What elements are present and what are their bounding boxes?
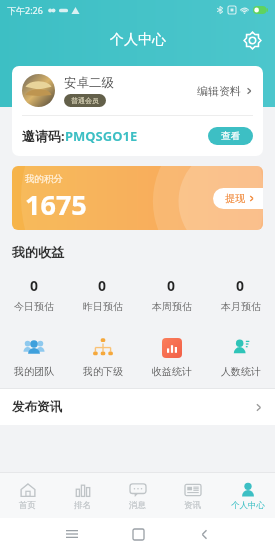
staticText: 本月预估 bbox=[221, 300, 261, 313]
button[interactable]: 0 bbox=[206, 276, 275, 313]
button[interactable]: 消息 bbox=[110, 473, 165, 518]
staticText: 我的团队 bbox=[14, 365, 54, 378]
button[interactable]: 0 bbox=[68, 276, 137, 313]
button[interactable]: 个人中心 bbox=[220, 473, 275, 518]
staticText: 提现 bbox=[225, 192, 245, 205]
button[interactable]: Recents bbox=[52, 518, 92, 550]
staticText: 发布资讯 bbox=[12, 399, 62, 415]
staticText: 邀请码: bbox=[22, 127, 65, 145]
staticText: 0 bbox=[236, 276, 245, 295]
staticText: 0 bbox=[30, 276, 39, 295]
staticText: 个人中心 bbox=[231, 500, 265, 511]
staticText: 查看 bbox=[221, 130, 240, 142]
staticText: 今日预估 bbox=[14, 300, 54, 313]
staticText: 资讯 bbox=[184, 500, 201, 511]
staticText: 人数统计 bbox=[221, 365, 261, 378]
button[interactable]: 0 bbox=[0, 276, 68, 313]
button[interactable]: 排名 bbox=[55, 473, 110, 518]
button[interactable]: Back bbox=[184, 518, 224, 550]
staticText: 本周预估 bbox=[152, 300, 192, 313]
staticText: 收益统计 bbox=[152, 365, 192, 378]
staticText: 下午2:26 bbox=[7, 4, 43, 16]
staticText: 1675 bbox=[25, 186, 87, 223]
button[interactable]: 安卓二级 bbox=[22, 66, 253, 115]
staticText: 0 bbox=[167, 276, 176, 295]
button[interactable]: Home bbox=[118, 518, 158, 550]
staticText: 安卓二级 bbox=[64, 75, 114, 91]
staticText: 普通会员 bbox=[71, 96, 99, 105]
staticText: 0 bbox=[98, 276, 107, 295]
button[interactable]: 我的积分 bbox=[12, 166, 263, 230]
button[interactable]: 我的团队 bbox=[0, 337, 68, 378]
staticText: 我的收益 bbox=[12, 244, 64, 260]
button[interactable]: 资讯 bbox=[165, 473, 220, 518]
staticText: PMQSGO1E bbox=[65, 127, 138, 145]
staticText: 个人中心 bbox=[110, 31, 166, 49]
button[interactable]: 提现 bbox=[213, 188, 263, 209]
button[interactable]: 查看 bbox=[208, 127, 253, 145]
staticText: 排名 bbox=[74, 500, 91, 511]
button[interactable]: 人数统计 bbox=[206, 337, 275, 378]
staticText: 我的下级 bbox=[83, 365, 123, 378]
staticText: 消息 bbox=[129, 500, 146, 511]
button[interactable]: 首页 bbox=[0, 473, 55, 518]
button[interactable]: Settings bbox=[239, 27, 265, 53]
button[interactable]: 我的下级 bbox=[68, 337, 137, 378]
staticText: 我的积分 bbox=[25, 173, 63, 185]
button[interactable]: 发布资讯 bbox=[0, 389, 275, 425]
staticText: 编辑资料 bbox=[197, 84, 241, 98]
staticText: 首页 bbox=[19, 500, 36, 511]
button[interactable]: 0 bbox=[137, 276, 206, 313]
button[interactable]: 收益统计 bbox=[137, 337, 206, 378]
staticText: 昨日预估 bbox=[83, 300, 123, 313]
